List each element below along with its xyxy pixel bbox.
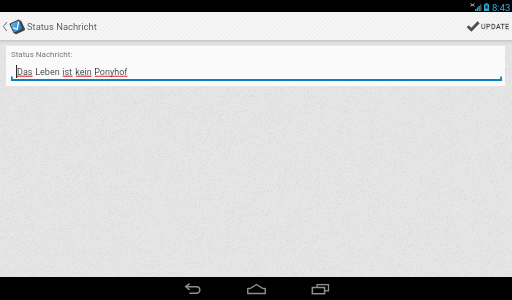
- staticText: Ponyhof: [92, 67, 128, 78]
- button[interactable]: UPDATE: [466, 12, 512, 40]
- button[interactable]: Status Nachricht: [0, 12, 103, 40]
- button[interactable]: Home: [224, 277, 288, 300]
- staticText: Status Nachricht:: [11, 50, 73, 59]
- staticText: Leben: [33, 67, 60, 78]
- staticText: ist: [60, 67, 73, 78]
- staticText: Status Nachricht: [27, 21, 97, 32]
- button[interactable]: Back: [160, 277, 224, 300]
- staticText: Das: [17, 67, 33, 78]
- staticText: kein: [73, 67, 92, 78]
- staticText: UPDATE: [481, 22, 510, 30]
- staticText: 8:43: [492, 2, 511, 13]
- button[interactable]: Recent apps: [288, 277, 352, 300]
